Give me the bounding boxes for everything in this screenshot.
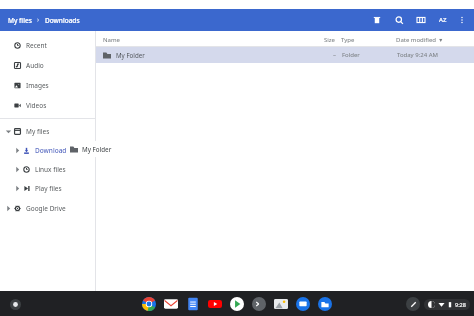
- staticText: Date modified ▾: [396, 36, 443, 44]
- button[interactable]: Recent: [0, 37, 95, 53]
- button[interactable]: YouTube: [207, 296, 223, 312]
- button[interactable]: Terminal: [251, 296, 267, 312]
- button[interactable]: System status: [428, 301, 466, 308]
- staticText: Folder: [342, 51, 360, 59]
- staticText: Type: [341, 36, 355, 44]
- staticText: Downloads: [45, 16, 80, 25]
- staticText: My Folder: [116, 51, 145, 59]
- button[interactable]: My Folder: [96, 47, 474, 63]
- button[interactable]: Search: [390, 11, 408, 29]
- button[interactable]: Stylus tools: [406, 297, 420, 311]
- button[interactable]: Size: [313, 36, 335, 44]
- staticText: 9:28: [455, 301, 466, 308]
- button[interactable]: Images: [0, 77, 95, 93]
- button[interactable]: Messages: [295, 296, 311, 312]
- button[interactable]: Downloads: [0, 142, 95, 158]
- button[interactable]: Files: [317, 296, 333, 312]
- button[interactable]: Type: [341, 36, 396, 44]
- button[interactable]: My files: [0, 123, 95, 139]
- button[interactable]: Gmail: [163, 296, 179, 312]
- button[interactable]: Play files: [0, 180, 95, 196]
- staticText: My Folder: [82, 145, 112, 153]
- button[interactable]: My Folder: [66, 141, 116, 157]
- button[interactable]: My files: [8, 15, 80, 25]
- button[interactable]: More options: [454, 12, 470, 28]
- button[interactable]: Linux files: [0, 161, 95, 177]
- staticText: ›: [37, 15, 40, 25]
- staticText: Linux files: [35, 165, 66, 174]
- staticText: Audio: [26, 61, 44, 70]
- staticText: AZ: [439, 16, 447, 24]
- button[interactable]: Sort A to Z: [434, 11, 452, 29]
- staticText: Name: [103, 36, 120, 44]
- staticText: Videos: [26, 101, 47, 110]
- staticText: Google Drive: [26, 204, 66, 213]
- button[interactable]: Google Drive: [0, 200, 95, 216]
- staticText: My files: [26, 127, 50, 136]
- button[interactable]: Audio: [0, 57, 95, 73]
- button[interactable]: Launcher: [8, 297, 22, 311]
- staticText: –: [314, 51, 336, 59]
- button[interactable]: Grid view: [412, 11, 430, 29]
- staticText: Images: [26, 81, 49, 90]
- button[interactable]: Delete: [368, 11, 386, 29]
- button[interactable]: Name: [103, 36, 313, 44]
- button[interactable]: Date modified ▾: [396, 36, 474, 44]
- staticText: My files: [8, 16, 32, 25]
- staticText: Recent: [26, 41, 47, 50]
- button[interactable]: Docs: [185, 296, 201, 312]
- button[interactable]: Play Store: [229, 296, 245, 312]
- button[interactable]: Photos: [273, 296, 289, 312]
- staticText: Play files: [35, 184, 62, 193]
- button[interactable]: Videos: [0, 97, 95, 113]
- button[interactable]: Chrome: [141, 296, 157, 312]
- staticText: Downloads: [35, 146, 70, 155]
- staticText: Size: [313, 36, 335, 44]
- staticText: Today 9:24 AM: [397, 51, 438, 59]
